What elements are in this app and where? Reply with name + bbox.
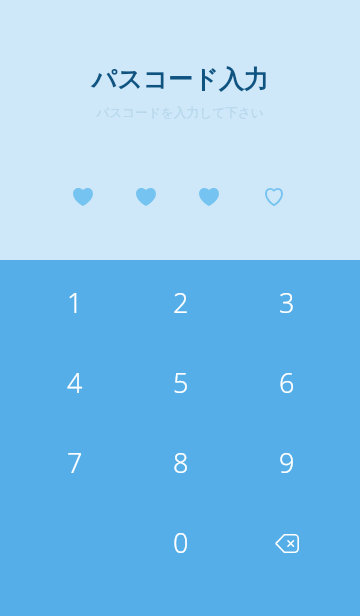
staticText: 3: [279, 284, 295, 321]
staticText: パスコード入力: [91, 64, 269, 95]
button[interactable]: Delete: [234, 502, 340, 582]
button[interactable]: 7: [22, 422, 128, 502]
staticText: 2: [173, 284, 189, 321]
staticText: 9: [279, 444, 295, 481]
staticText: 8: [173, 444, 189, 481]
staticText: 7: [67, 444, 83, 481]
button[interactable]: 0: [128, 502, 234, 582]
button[interactable]: 2: [128, 262, 234, 342]
staticText: 5: [173, 364, 189, 401]
staticText: 6: [279, 364, 295, 401]
button[interactable]: 4: [22, 342, 128, 422]
staticText: 0: [173, 524, 189, 561]
button[interactable]: 9: [234, 422, 340, 502]
button[interactable]: 5: [128, 342, 234, 422]
button[interactable]: 8: [128, 422, 234, 502]
staticText: パスコードを入力して下さい: [96, 105, 264, 121]
button[interactable]: 6: [234, 342, 340, 422]
button[interactable]: 1: [22, 262, 128, 342]
button[interactable]: 3: [234, 262, 340, 342]
staticText: 1: [67, 284, 83, 321]
staticText: 4: [67, 364, 83, 401]
